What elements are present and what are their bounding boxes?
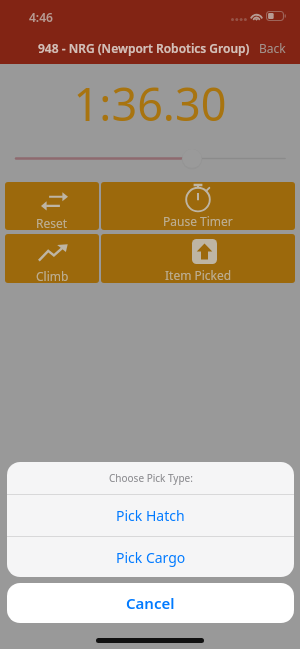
button[interactable]: Back — [245, 35, 300, 61]
staticText: Back — [259, 40, 286, 56]
staticText: 1:36.30 — [0, 73, 300, 121]
staticText: 948 - NRG (Newport Robotics Group) — [38, 40, 250, 56]
staticText: Item Picked — [165, 267, 232, 283]
button[interactable]: Pick Hatch — [7, 495, 294, 536]
staticText: Cancel — [126, 593, 175, 613]
staticText: Choose Pick Type: — [109, 471, 193, 485]
button[interactable]: Item Picked — [101, 234, 295, 283]
button[interactable]: Cancel — [7, 583, 294, 623]
staticText: Climb — [36, 268, 69, 283]
button[interactable]: Pick Cargo — [7, 537, 294, 577]
button[interactable]: Climb — [5, 234, 99, 283]
staticText: Pick Cargo — [116, 548, 186, 567]
staticText: 4:46 — [29, 9, 53, 25]
button[interactable]: Reset — [5, 182, 99, 230]
button[interactable]: Timer position slider — [0, 147, 300, 169]
button[interactable]: Pause Timer — [101, 182, 295, 230]
staticText: Pick Hatch — [116, 506, 185, 525]
staticText: Pause Timer — [163, 213, 233, 229]
staticText: Reset — [36, 215, 68, 230]
